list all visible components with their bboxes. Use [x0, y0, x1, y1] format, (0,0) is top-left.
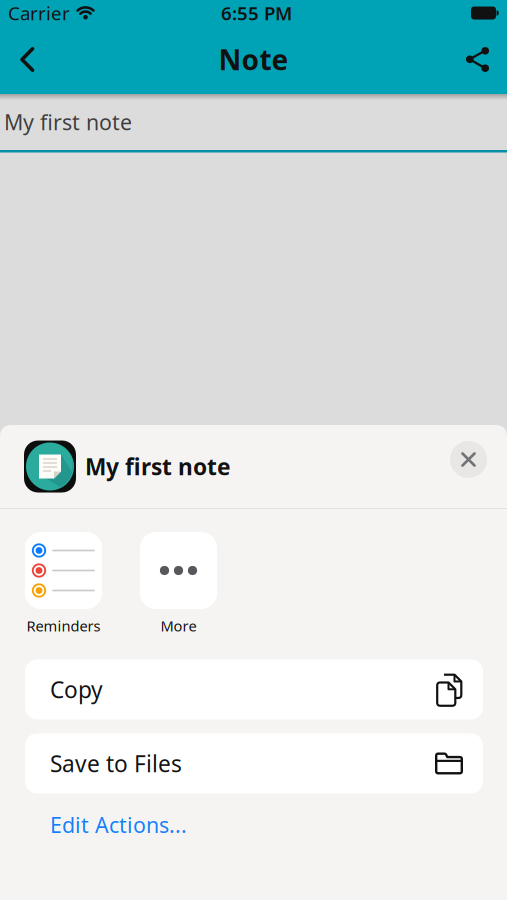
- button[interactable]: Edit Actions...: [50, 810, 187, 839]
- button[interactable]: More: [140, 532, 217, 635]
- button[interactable]: Share: [466, 31, 507, 88]
- staticText: Save to Files: [50, 748, 182, 778]
- staticText: My first note: [85, 451, 231, 481]
- staticText: More: [160, 616, 196, 635]
- staticText: Carrier: [8, 1, 70, 25]
- button[interactable]: Save to Files: [25, 733, 483, 793]
- staticText: Note: [218, 41, 288, 78]
- button[interactable]: Back: [0, 31, 35, 88]
- staticText: Copy: [50, 674, 103, 704]
- button[interactable]: Copy: [25, 659, 483, 719]
- button[interactable]: Reminders: [25, 532, 102, 635]
- staticText: Edit Actions...: [50, 810, 187, 839]
- staticText: Reminders: [26, 616, 100, 635]
- button[interactable]: Close: [450, 441, 507, 478]
- staticText: 6:55 PM: [221, 1, 292, 25]
- staticText: My first note: [4, 108, 132, 136]
